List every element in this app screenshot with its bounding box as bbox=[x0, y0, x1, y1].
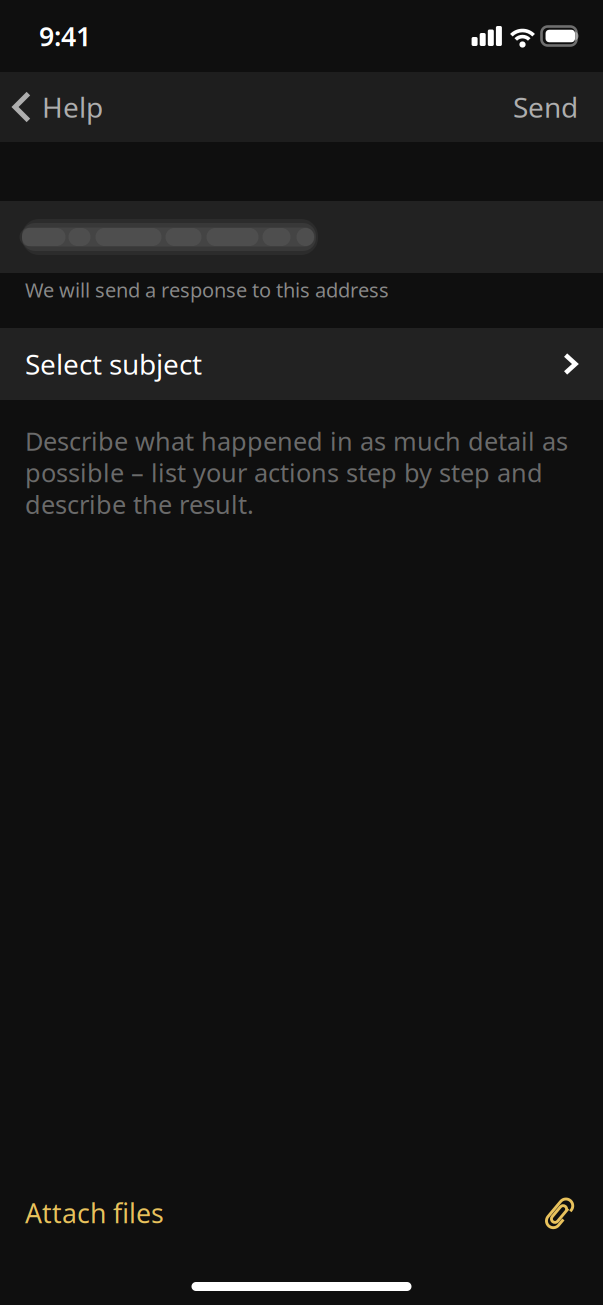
staticText: Help bbox=[42, 88, 103, 126]
button[interactable]: Attach files bbox=[0, 1181, 603, 1245]
staticText: Describe what happened in as much detail… bbox=[25, 424, 568, 521]
button[interactable]: Send bbox=[497, 72, 594, 142]
staticText: We will send a response to this address bbox=[25, 276, 389, 303]
button[interactable]: Help bbox=[0, 72, 117, 142]
staticText: 9:41 bbox=[39, 18, 91, 54]
button[interactable]: Select subject bbox=[0, 328, 603, 400]
button[interactable] bbox=[0, 201, 603, 273]
staticText: Select subject bbox=[25, 345, 202, 383]
staticText: Send bbox=[513, 88, 578, 126]
staticText: Attach files bbox=[25, 1195, 164, 1231]
